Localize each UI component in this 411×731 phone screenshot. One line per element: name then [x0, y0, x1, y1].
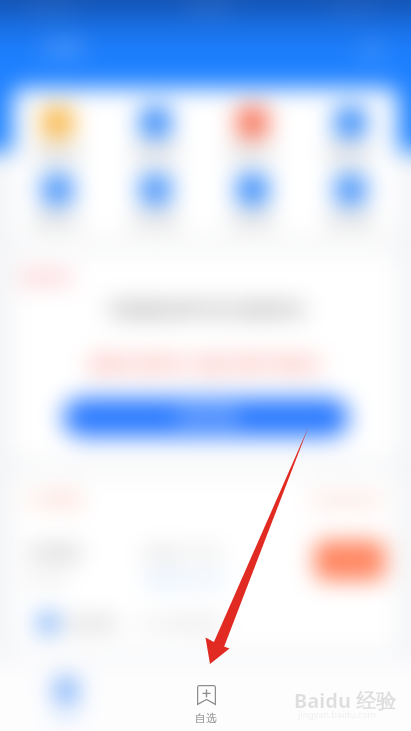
button[interactable]: 立即申购: [316, 542, 384, 579]
button[interactable]: 自选: [174, 678, 238, 731]
button[interactable]: 立即开通: [63, 398, 349, 437]
staticText: 新股申购: [35, 146, 79, 160]
staticText: 立即开通: [176, 408, 236, 427]
staticText: 银证转账: [133, 213, 177, 227]
staticText: 交易查询: [230, 213, 274, 227]
staticText: 我的持仓: [35, 213, 79, 227]
button[interactable]: 两融业务: [309, 107, 391, 160]
staticText: 理财产品: [230, 146, 274, 160]
button[interactable]: 新股申购: [16, 107, 98, 160]
button[interactable]: 交易查询: [211, 174, 293, 227]
button[interactable]: 新债申购: [114, 107, 196, 160]
button[interactable]: 理财产品: [211, 107, 293, 160]
staticText: 立即申购: [326, 553, 374, 568]
button[interactable]: 银证转账: [114, 174, 196, 227]
staticText: 交易: [44, 36, 82, 60]
staticText: 自选: [195, 711, 217, 725]
staticText: 新债申购: [133, 146, 177, 160]
staticText: jingyan.baidu.com: [298, 708, 376, 720]
button[interactable]: 更多功能: [309, 174, 391, 227]
button[interactable]: 交易: [55, 679, 77, 721]
staticText: 今日申购: [28, 491, 80, 507]
staticText: 交易: [55, 707, 77, 721]
button[interactable]: 我的持仓: [16, 174, 98, 227]
staticText: 新股中签率高 收益可观不容错过: [89, 353, 322, 375]
staticText: 更多功能: [328, 213, 372, 227]
staticText: 今日可转债申购: [138, 616, 222, 631]
staticText: 开通权限后即可参与新股申购: [108, 301, 303, 320]
staticText: 新债申购: [68, 616, 116, 631]
other: 自选: [197, 685, 216, 705]
staticText: 两融业务: [328, 146, 372, 160]
staticText: Baidu 经验: [294, 687, 397, 714]
